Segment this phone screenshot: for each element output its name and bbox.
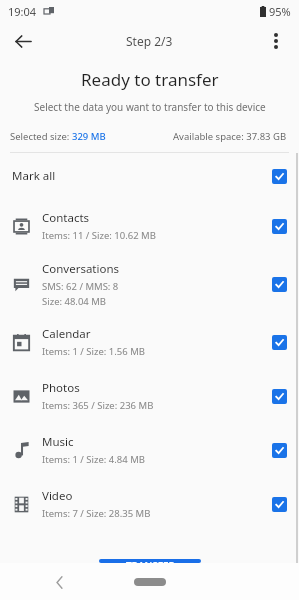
button[interactable]: Contacts xyxy=(0,199,299,253)
button[interactable]: Checked xyxy=(272,389,287,404)
staticText: Conversations xyxy=(42,261,120,277)
button[interactable]: Back xyxy=(4,22,42,60)
staticText: Select the data you want to transfer to … xyxy=(34,100,266,114)
staticText: 19:04 xyxy=(8,4,37,19)
button[interactable]: Video xyxy=(0,477,299,531)
button[interactable]: Home xyxy=(127,570,173,594)
staticText: 329 MB xyxy=(72,130,106,143)
button[interactable]: Checked xyxy=(272,277,287,292)
staticText: Items: 1 / Size: 4.84 MB xyxy=(42,453,145,466)
button[interactable]: Checked xyxy=(272,443,287,458)
staticText: Available space: 37.83 GB xyxy=(173,130,287,143)
button[interactable]: Checked xyxy=(272,497,287,512)
button[interactable]: Checked xyxy=(272,169,287,184)
staticText: TRANSFER xyxy=(126,559,175,563)
staticText: Items: 1 / Size: 1.56 MB xyxy=(42,345,145,358)
button[interactable]: Mark all xyxy=(0,153,299,199)
staticText: 95% xyxy=(269,4,291,19)
staticText: Items: 7 / Size: 28.35 MB xyxy=(42,507,151,520)
staticText: Items: 11 / Size: 10.62 MB xyxy=(42,229,156,242)
staticText: Selected size: xyxy=(10,130,72,143)
staticText: Items: 365 / Size: 236 MB xyxy=(42,399,154,412)
button[interactable]: Music xyxy=(0,423,299,477)
button[interactable]: Conversations xyxy=(0,253,299,315)
button[interactable]: More options xyxy=(257,22,295,60)
button[interactable]: Calendar xyxy=(0,315,299,369)
staticText: Size: 48.04 MB xyxy=(42,295,107,308)
staticText: Calendar xyxy=(42,326,91,342)
button[interactable]: TRANSFER xyxy=(99,559,201,563)
staticText: Photos xyxy=(42,380,80,396)
staticText: Video xyxy=(42,488,73,504)
button[interactable]: Back xyxy=(44,567,74,597)
staticText: SMS: 62 / MMS: 8 xyxy=(42,280,119,293)
staticText: Ready to transfer xyxy=(81,68,219,91)
button[interactable]: Photos xyxy=(0,369,299,423)
staticText: Music xyxy=(42,434,74,450)
staticText: Mark all xyxy=(12,168,56,184)
button[interactable]: Checked xyxy=(272,335,287,350)
staticText: Contacts xyxy=(42,210,90,226)
staticText: Step 2/3 xyxy=(126,33,173,49)
button[interactable]: Checked xyxy=(272,219,287,234)
